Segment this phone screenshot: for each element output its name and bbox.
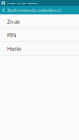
- button[interactable]: PIN: [0, 29, 79, 42]
- button[interactable]: Heslo: [0, 42, 79, 55]
- button[interactable]: Znak: [0, 15, 79, 28]
- staticText: Ukládání snímku obrazovky…: [7, 1, 39, 5]
- staticText: Zvolte metodu odemknutí: [7, 7, 61, 13]
- staticText: Znak: [7, 18, 20, 25]
- staticText: PIN: [7, 31, 16, 39]
- staticText: Heslo: [7, 45, 21, 52]
- button[interactable]: Back: [0, 6, 7, 14]
